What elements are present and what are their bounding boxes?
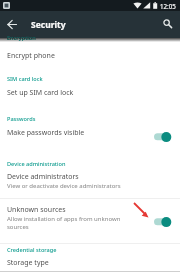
staticText: SIM card lock [7, 75, 43, 83]
button[interactable] [157, 13, 177, 33]
staticText: Credential storage [7, 246, 57, 254]
staticText: Encryption [7, 34, 36, 42]
staticText: Allow installation of apps from unknown [7, 215, 121, 223]
button[interactable] [0, 42, 180, 62]
button[interactable] [0, 122, 180, 148]
staticText: Encrypt phone [7, 51, 55, 61]
staticText: Set up SIM card lock [7, 88, 74, 98]
staticText: Security [31, 19, 66, 31]
button[interactable] [150, 129, 172, 145]
staticText: Passwords [7, 115, 36, 123]
staticText: Encryption [7, 34, 36, 42]
staticText: 12:05 [160, 2, 176, 10]
button[interactable] [150, 214, 172, 230]
button[interactable] [2, 15, 22, 35]
staticText: Device administration [7, 160, 66, 168]
staticText: Make passwords visible [7, 128, 85, 138]
button[interactable] [0, 168, 180, 194]
staticText: Unknown sources [7, 205, 66, 215]
staticText: Storage type [7, 258, 49, 268]
staticText: Device administrators [7, 172, 79, 182]
staticText: sources [7, 223, 29, 231]
button[interactable] [0, 80, 180, 100]
staticText: View or deactivate device administrators [7, 182, 121, 190]
button[interactable] [0, 199, 180, 239]
button[interactable] [0, 253, 180, 273]
